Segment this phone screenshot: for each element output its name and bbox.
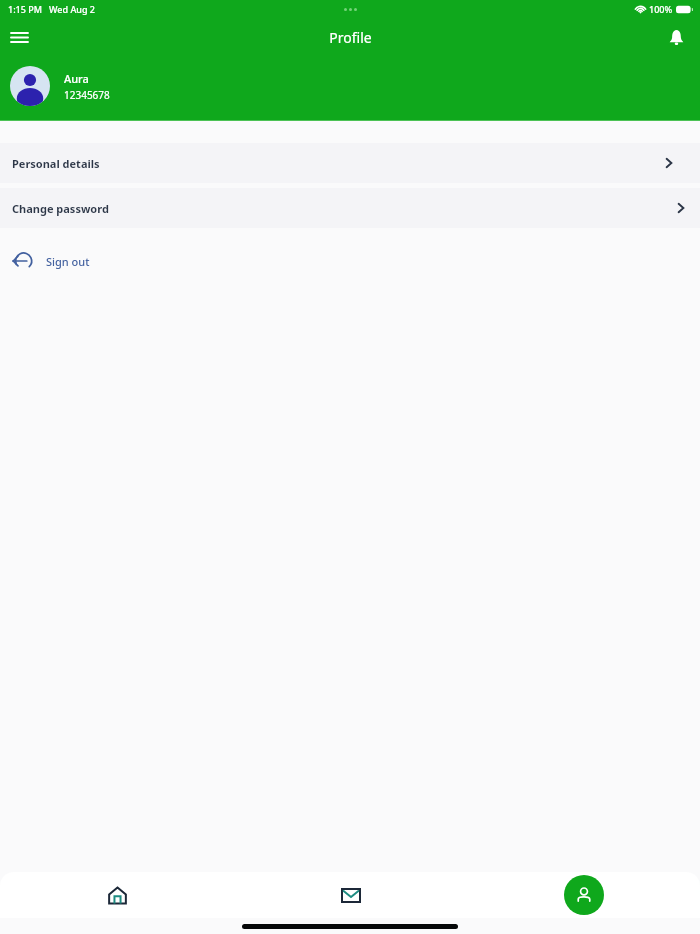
button[interactable]: Menu — [3, 21, 35, 53]
staticText: 100% — [649, 3, 673, 15]
staticText: 12345678 — [64, 88, 110, 102]
staticText: Change password — [12, 201, 109, 216]
button[interactable]: Profile — [564, 875, 604, 915]
staticText: Sign out — [46, 254, 90, 269]
button[interactable]: Home — [0, 872, 234, 918]
staticText: Profile — [329, 28, 372, 47]
button[interactable]: Messages — [234, 872, 467, 918]
staticText: Wed Aug 2 — [49, 3, 95, 15]
button[interactable]: Sign out — [12, 243, 90, 279]
staticText: Aura — [64, 71, 89, 86]
button[interactable]: Personal details — [0, 143, 700, 183]
button[interactable]: Notifications — [660, 21, 692, 53]
button[interactable]: Change password — [0, 188, 700, 228]
staticText: Personal details — [12, 156, 100, 171]
staticText: 1:15 PM — [8, 3, 42, 15]
